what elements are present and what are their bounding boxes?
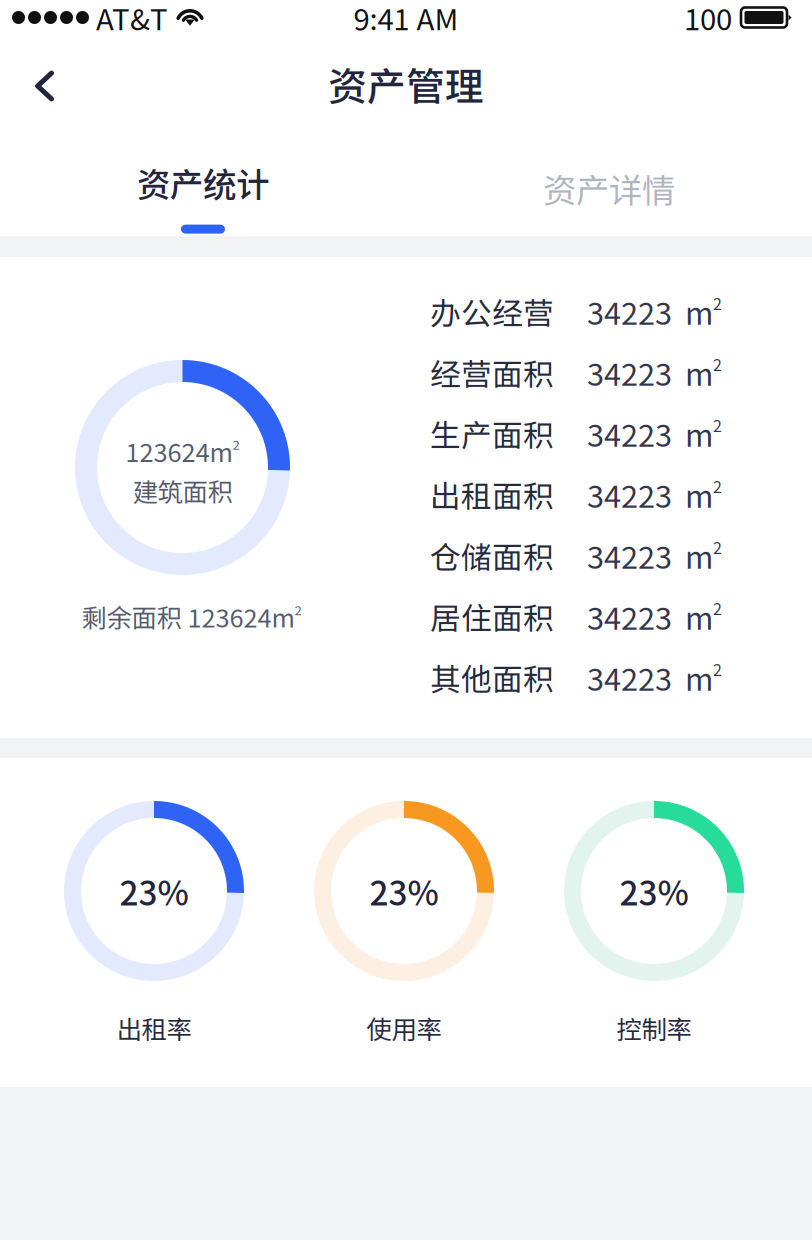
staticText: m xyxy=(685,594,713,639)
staticText: m xyxy=(685,472,713,517)
staticText: 34223 xyxy=(587,411,672,456)
staticText: 2 xyxy=(713,597,722,620)
staticText: 2 xyxy=(713,658,722,681)
staticText: 23% xyxy=(119,867,188,915)
staticText: 2 xyxy=(713,475,722,498)
staticText: 100 xyxy=(684,0,732,39)
staticText: 生产面积 xyxy=(430,411,554,456)
staticText: 34223 xyxy=(587,350,672,395)
staticText: 控制率 xyxy=(616,1010,691,1046)
staticText: 出租率 xyxy=(116,1010,191,1046)
staticText: 仓储面积 xyxy=(430,533,554,578)
staticText: m xyxy=(685,411,713,456)
staticText: 出租面积 xyxy=(430,472,554,517)
staticText: 资产统计 xyxy=(137,158,269,207)
staticText: AT&T xyxy=(96,0,168,39)
button[interactable]: 资产统计 xyxy=(0,133,406,236)
staticText: 经营面积 xyxy=(430,350,554,395)
staticText: 123624m xyxy=(125,433,232,469)
staticText: 23% xyxy=(369,867,438,915)
staticText: 23% xyxy=(619,867,688,915)
staticText: 2 xyxy=(232,435,239,454)
staticText: 34223 xyxy=(587,594,672,639)
staticText: 34223 xyxy=(587,655,672,700)
staticText: m xyxy=(685,655,713,700)
staticText: 2 xyxy=(713,353,722,376)
staticText: 34223 xyxy=(587,289,672,334)
staticText: 34223 xyxy=(587,472,672,517)
staticText: m xyxy=(685,289,713,334)
staticText: 2 xyxy=(713,292,722,315)
button[interactable]: 资产详情 xyxy=(406,133,812,236)
staticText: 使用率 xyxy=(366,1010,441,1046)
staticText: 2 xyxy=(294,600,301,619)
staticText: 34223 xyxy=(587,533,672,578)
staticText: 资产管理 xyxy=(328,56,484,112)
staticText: 资产详情 xyxy=(543,164,675,212)
staticText: 建筑面积 xyxy=(132,472,232,509)
staticText: 居住面积 xyxy=(430,594,554,639)
staticText: 2 xyxy=(713,536,722,559)
button[interactable]: Back xyxy=(0,35,89,133)
staticText: 剩余面积 123624m xyxy=(81,598,294,635)
staticText: m xyxy=(685,533,713,578)
staticText: 9:41 AM xyxy=(353,0,458,39)
staticText: m xyxy=(685,350,713,395)
staticText: 办公经营 xyxy=(430,289,554,334)
staticText: 2 xyxy=(713,414,722,437)
staticText: 其他面积 xyxy=(430,655,554,700)
